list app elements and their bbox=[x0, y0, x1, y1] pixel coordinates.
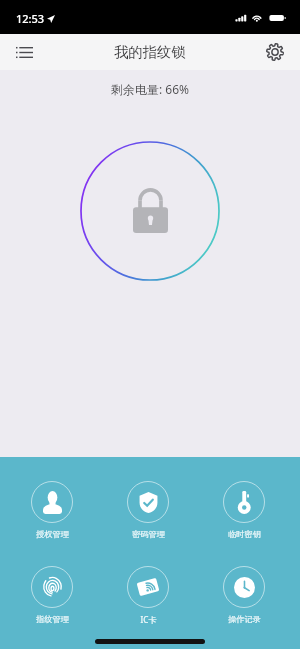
staticText: 临时密钥 bbox=[228, 529, 261, 539]
staticText: 剩余电量: 66% bbox=[111, 81, 190, 97]
button[interactable]: 临时密钥 bbox=[209, 481, 279, 539]
button[interactable]: 密码管理 bbox=[113, 481, 183, 539]
button[interactable]: 操作记录 bbox=[209, 566, 279, 624]
staticText: 密码管理 bbox=[132, 529, 165, 539]
button[interactable]: IC卡 bbox=[113, 566, 183, 625]
button[interactable]: Settings bbox=[257, 34, 293, 70]
button[interactable]: 授权管理 bbox=[17, 481, 87, 539]
staticText: 12:53 bbox=[16, 11, 45, 26]
staticText: 我的指纹锁 bbox=[114, 43, 186, 61]
button[interactable]: Menu bbox=[6, 34, 42, 70]
button[interactable]: 指纹管理 bbox=[17, 566, 87, 624]
staticText: 指纹管理 bbox=[36, 614, 69, 624]
staticText: 授权管理 bbox=[36, 529, 69, 539]
staticText: 操作记录 bbox=[228, 614, 261, 624]
staticText: IC卡 bbox=[140, 614, 157, 625]
